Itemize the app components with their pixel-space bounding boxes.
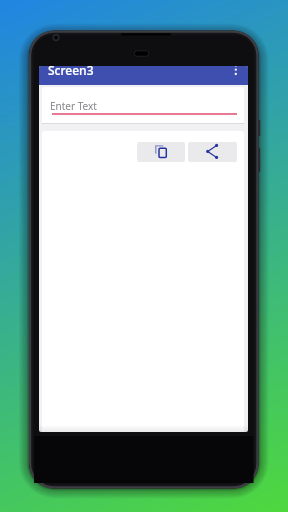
staticText: Enter Text (50, 99, 97, 113)
button[interactable]: Enter Text (42, 87, 244, 124)
button[interactable] (188, 142, 237, 162)
staticText: Screen3 (48, 66, 94, 78)
button[interactable] (229, 66, 242, 81)
button[interactable] (137, 142, 185, 162)
